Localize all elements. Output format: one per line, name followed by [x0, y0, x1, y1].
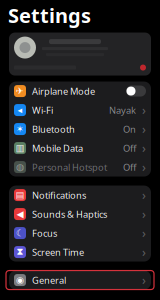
staticText: › — [142, 159, 146, 175]
staticText: › — [142, 244, 146, 260]
staticText: Mobile Data — [32, 142, 83, 154]
staticText: ▤ — [15, 190, 24, 200]
staticText: On — [123, 123, 136, 135]
staticText: ☾ — [16, 228, 24, 238]
button[interactable]: ⧗ — [9, 243, 151, 262]
button[interactable]: ◍ — [9, 158, 151, 177]
staticText: ✈ — [16, 86, 24, 96]
staticText: ▥ — [15, 143, 24, 153]
staticText: ◍ — [16, 162, 24, 172]
staticText: Wi-Fi — [32, 104, 53, 116]
staticText: › — [142, 225, 146, 241]
button[interactable] — [9, 33, 151, 76]
staticText: › — [142, 121, 146, 137]
staticText: ✶ — [16, 124, 24, 134]
staticText: Nayak — [109, 104, 136, 116]
button[interactable]: ▥ — [9, 139, 151, 158]
staticText: ⧗ — [16, 247, 23, 257]
staticText: › — [142, 140, 146, 156]
staticText: Personal Hotspot — [32, 161, 107, 173]
staticText: Airplane Mode — [32, 85, 95, 97]
staticText: Settings — [8, 2, 91, 29]
button[interactable]: ☾ — [9, 224, 151, 243]
button[interactable]: ✶ — [9, 120, 151, 139]
staticText: Sounds & Haptics — [32, 208, 107, 220]
staticText: › — [142, 102, 146, 118]
button[interactable]: ✈ — [9, 82, 151, 101]
button[interactable]: ◂ — [9, 101, 151, 120]
staticText: Bluetooth — [32, 123, 75, 135]
staticText: › — [142, 272, 146, 288]
staticText: ◀ — [16, 209, 23, 219]
staticText: General — [32, 274, 66, 286]
staticText: Screen Time — [32, 246, 84, 258]
button[interactable]: ◉ — [9, 271, 151, 290]
staticText: ◂ — [17, 105, 22, 115]
staticText: Focus — [32, 227, 57, 239]
staticText: Off — [123, 161, 136, 173]
button[interactable]: ▤ — [9, 186, 151, 205]
staticText: › — [142, 206, 146, 222]
staticText: › — [142, 187, 146, 203]
staticText: Notifications — [32, 189, 86, 201]
staticText: ◉ — [16, 275, 24, 285]
staticText: Off — [123, 142, 136, 154]
button[interactable]: ◀ — [9, 205, 151, 224]
